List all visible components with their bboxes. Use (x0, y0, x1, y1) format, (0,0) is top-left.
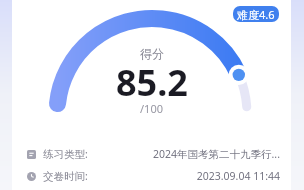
staticText: 85.2 (116, 58, 188, 107)
staticText: 得分 (140, 46, 164, 61)
staticText: 交卷时间: (43, 169, 88, 183)
staticText: 2023.09.04 11:44 (196, 169, 280, 183)
button[interactable]: 难度4.6 (233, 6, 279, 22)
staticText: 难度4.6 (237, 7, 275, 22)
staticText: 练习类型: (43, 147, 88, 161)
staticText: 2024年国考第二十九季行... (153, 147, 280, 161)
staticText: /100 (140, 101, 163, 116)
